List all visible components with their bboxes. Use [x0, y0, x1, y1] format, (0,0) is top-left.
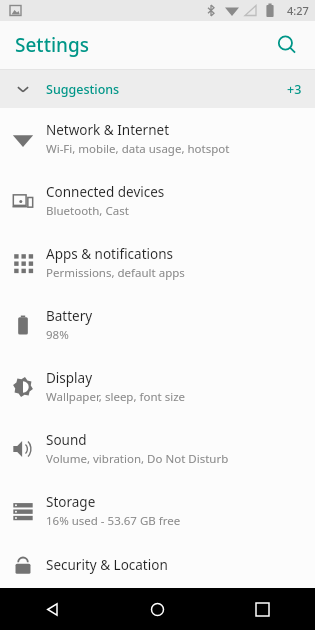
staticText: Apps & notifications [46, 245, 173, 263]
staticText: Volume, vibration, Do Not Disturb [46, 451, 229, 467]
button[interactable]: Display [0, 356, 315, 418]
staticText: Suggestions [46, 81, 287, 98]
staticText: Battery [46, 307, 93, 325]
staticText: Wallpaper, sleep, font size [46, 389, 186, 405]
staticText: 16% used - 53.67 GB free [46, 513, 181, 529]
staticText: Connected devices [46, 183, 165, 201]
button[interactable]: Battery [0, 294, 315, 356]
button[interactable]: Apps & notifications [0, 232, 315, 294]
staticText: Security & Location [46, 556, 168, 574]
staticText: 4:27 [287, 3, 309, 18]
staticText: 98% [46, 327, 69, 343]
staticText: +3 [287, 81, 302, 98]
button[interactable]: Search [267, 25, 307, 65]
staticText: Permissions, default apps [46, 265, 185, 281]
button[interactable]: Network & Internet [0, 108, 315, 170]
button[interactable]: Sound [0, 418, 315, 480]
button[interactable]: Security & Location [0, 542, 315, 588]
button[interactable]: Suggestions [0, 70, 315, 108]
staticText: Display [46, 369, 93, 387]
staticText: Storage [46, 493, 96, 511]
button[interactable]: Storage [0, 480, 315, 542]
button[interactable]: Back [0, 588, 105, 630]
staticText: Network & Internet [46, 121, 170, 139]
staticText: Bluetooth, Cast [46, 203, 129, 219]
staticText: Wi-Fi, mobile, data usage, hotspot [46, 141, 230, 157]
button[interactable]: Home [105, 588, 210, 630]
button[interactable]: Connected devices [0, 170, 315, 232]
staticText: Sound [46, 431, 87, 449]
staticText: Settings [15, 32, 89, 58]
button[interactable]: Recents [210, 588, 315, 630]
